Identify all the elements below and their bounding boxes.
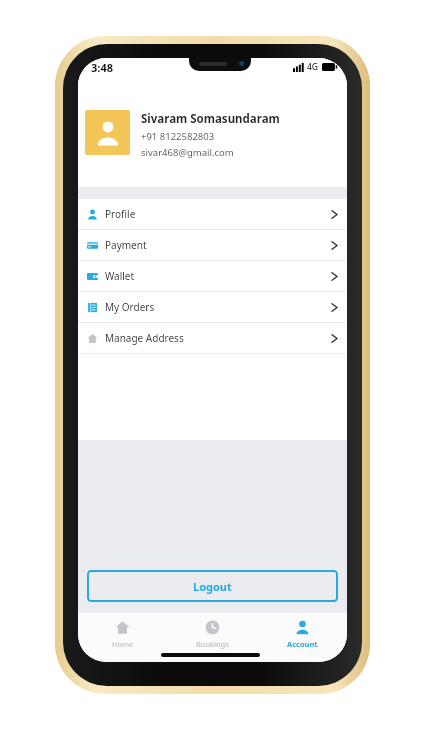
button[interactable]: Account xyxy=(257,613,347,662)
staticText: +91 8122582803 xyxy=(141,130,215,143)
button[interactable]: Profile xyxy=(78,199,347,229)
staticText: sivar468@gmail.com xyxy=(141,146,234,159)
staticText: Account xyxy=(287,639,318,649)
staticText: Profile xyxy=(105,207,136,221)
staticText: Sivaram Somasundaram xyxy=(141,111,280,127)
button[interactable]: Logout xyxy=(87,570,338,602)
staticText: Bookings xyxy=(196,639,229,649)
staticText: My Orders xyxy=(105,300,155,314)
staticText: Logout xyxy=(193,579,232,594)
staticText: 4G xyxy=(307,61,319,73)
button[interactable]: Home xyxy=(78,613,167,662)
button[interactable]: Payment xyxy=(78,230,347,260)
button[interactable]: Manage Address xyxy=(78,323,347,353)
staticText: Payment xyxy=(105,238,147,252)
button[interactable]: Wallet xyxy=(78,261,347,291)
staticText: 3:48 xyxy=(91,60,113,75)
staticText: Home xyxy=(112,639,134,649)
staticText: Wallet xyxy=(105,269,135,283)
staticText: Manage Address xyxy=(105,331,184,345)
button[interactable]: Bookings xyxy=(167,613,257,662)
button[interactable]: My Orders xyxy=(78,292,347,322)
